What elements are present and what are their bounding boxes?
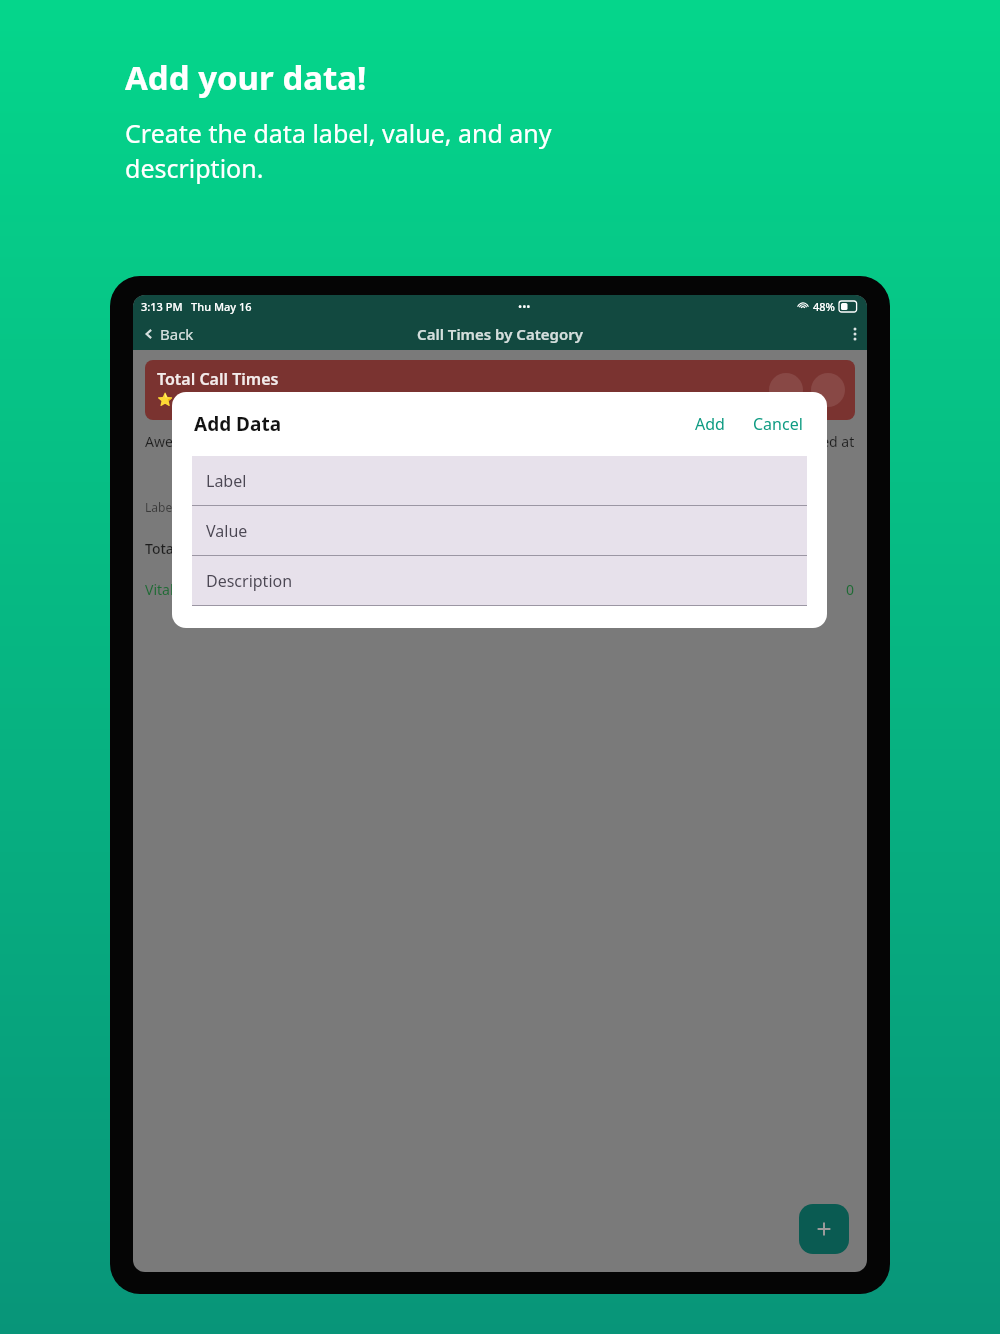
staticText: Add Data [194, 411, 282, 437]
button[interactable]: Card action [769, 373, 803, 407]
staticText: 0 [846, 580, 855, 599]
staticText: Call Times by Category [417, 324, 583, 344]
staticText: Total Call Times [157, 368, 279, 390]
staticText: Vital Roll @ 50% [145, 580, 250, 599]
button[interactable]: Add [799, 1204, 849, 1254]
staticText: Create the data label, value, and any de… [125, 116, 552, 186]
button[interactable]: Cancel [747, 407, 809, 441]
button[interactable]: Label [192, 456, 807, 506]
staticText: Awesome [145, 432, 210, 451]
staticText: ⭐ [157, 392, 174, 407]
staticText: Cancel [753, 413, 803, 435]
button[interactable]: Back [133, 320, 204, 348]
button[interactable]: Card action [811, 373, 845, 407]
staticText: Created at [786, 432, 855, 451]
staticText: 3:13 PM Thu May 16 [141, 299, 252, 314]
button[interactable]: Value [192, 506, 807, 556]
staticText: 48% [813, 299, 835, 314]
staticText: ••• [518, 299, 531, 314]
staticText: Label [206, 470, 247, 492]
staticText: Back [160, 324, 194, 344]
staticText: Total [145, 539, 178, 558]
staticText: Label [145, 499, 176, 515]
staticText: Add [695, 413, 725, 435]
button[interactable]: More options [843, 320, 867, 348]
button[interactable]: Description [192, 556, 807, 606]
button[interactable]: Add [685, 407, 735, 441]
staticText: Add your data! [125, 55, 367, 100]
staticText: Value [206, 520, 248, 542]
staticText: Description [206, 570, 293, 592]
